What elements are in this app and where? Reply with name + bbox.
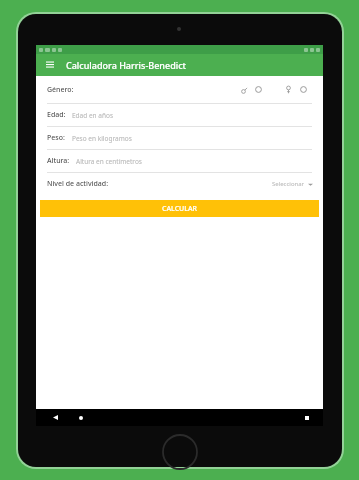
button[interactable]: CALCULAR xyxy=(40,200,319,217)
staticText: Calculadora Harris-Benedict xyxy=(66,59,187,71)
staticText: Peso en kilogramos xyxy=(72,134,132,143)
button[interactable]: Recent apps xyxy=(301,409,313,426)
staticText: Nivel de actividad: xyxy=(47,179,109,189)
staticText: Género: xyxy=(47,85,74,95)
staticText: Edad: xyxy=(47,110,66,120)
button[interactable]: Peso: xyxy=(36,127,323,149)
button[interactable]: Nivel de actividad: xyxy=(36,173,323,195)
staticText: CALCULAR xyxy=(162,204,197,214)
button[interactable]: Female xyxy=(282,85,309,94)
staticText: Edad en años xyxy=(72,111,114,120)
button[interactable]: Male xyxy=(237,85,264,94)
button[interactable]: Open navigation menu xyxy=(43,58,57,72)
button[interactable]: Edad: xyxy=(36,104,323,126)
staticText: Peso: xyxy=(47,133,65,143)
staticText: Seleccionar xyxy=(272,180,305,188)
staticText: Altura en centímetros xyxy=(76,157,142,166)
staticText: Altura: xyxy=(47,156,70,166)
button[interactable]: Home xyxy=(72,409,90,426)
button[interactable]: Back xyxy=(46,409,64,426)
button[interactable]: Altura: xyxy=(36,150,323,172)
